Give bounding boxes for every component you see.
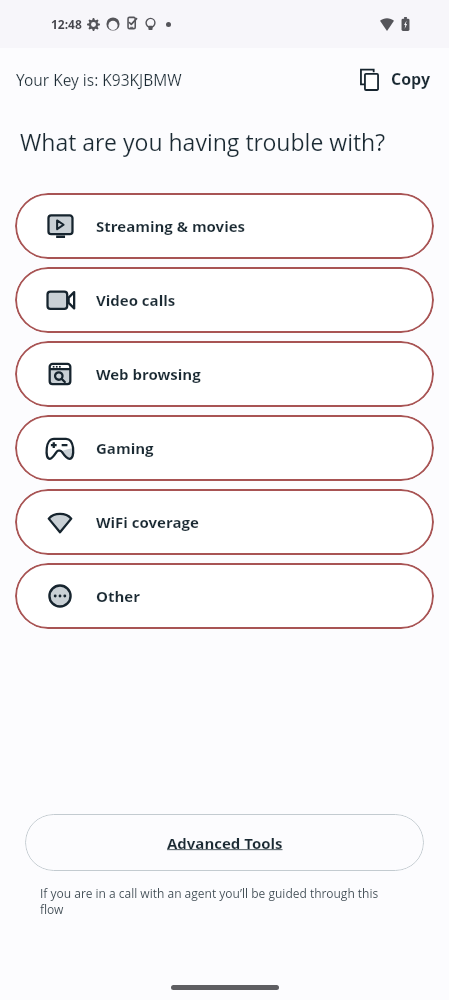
button[interactable]: Gaming (15, 415, 434, 481)
staticText: WiFi coverage (96, 512, 199, 532)
staticText: Advanced Tools (167, 833, 283, 853)
button[interactable]: Video calls (15, 267, 434, 333)
staticText: Streaming & movies (96, 216, 246, 236)
staticText: Gaming (96, 438, 154, 458)
button[interactable]: Streaming & movies (15, 193, 434, 259)
button[interactable]: Web browsing (15, 341, 434, 407)
staticText: What are you having trouble with? (20, 126, 386, 157)
staticText: 12:48 (51, 16, 82, 32)
staticText: Web browsing (96, 364, 201, 384)
staticText: Your Key is: K93KJBMW (16, 69, 182, 90)
button[interactable]: Copy (360, 68, 431, 90)
staticText: Copy (391, 68, 431, 90)
staticText: Video calls (96, 290, 176, 310)
staticText: If you are in a call with an agent you’l… (40, 885, 391, 917)
button[interactable]: Other (15, 563, 434, 629)
button[interactable]: WiFi coverage (15, 489, 434, 555)
button[interactable]: Advanced Tools (25, 814, 424, 871)
staticText: Other (96, 586, 140, 606)
